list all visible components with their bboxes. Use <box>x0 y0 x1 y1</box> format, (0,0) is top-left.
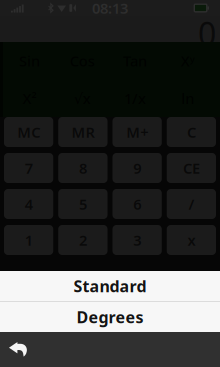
button[interactable]: 8 <box>58 153 107 183</box>
staticText: Standard <box>73 275 146 297</box>
staticText: 08:13 <box>92 0 128 18</box>
button[interactable]: CE <box>167 153 216 183</box>
staticText: 9 <box>133 158 141 178</box>
staticText: CE <box>183 158 200 178</box>
staticText: 1 <box>25 230 33 250</box>
staticText: M+ <box>126 122 148 142</box>
staticText: 8 <box>79 158 87 178</box>
staticText: / <box>188 194 194 214</box>
staticText: 6 <box>133 194 141 214</box>
staticText: 3 <box>133 230 141 250</box>
button[interactable]: MR <box>58 117 107 147</box>
button[interactable]: 5 <box>58 189 107 219</box>
button[interactable]: MC <box>4 117 53 147</box>
staticText: C <box>187 122 196 142</box>
staticText: 7 <box>25 158 33 178</box>
button[interactable]: Standard <box>0 271 220 301</box>
staticText: 0 <box>198 12 216 54</box>
button[interactable]: 3 <box>112 225 162 255</box>
button[interactable]: 9 <box>112 153 162 183</box>
staticText: 2 <box>79 230 87 250</box>
staticText: MC <box>17 122 40 142</box>
button[interactable]: 6 <box>112 189 162 219</box>
staticText: 4 <box>25 194 33 214</box>
button[interactable]: M+ <box>112 117 162 147</box>
button[interactable]: Degrees <box>0 302 220 332</box>
staticText: Degrees <box>76 306 143 328</box>
staticText: x <box>187 230 195 250</box>
button[interactable]: Back <box>0 332 28 367</box>
staticText: MR <box>71 122 94 142</box>
staticText: 5 <box>79 194 87 214</box>
